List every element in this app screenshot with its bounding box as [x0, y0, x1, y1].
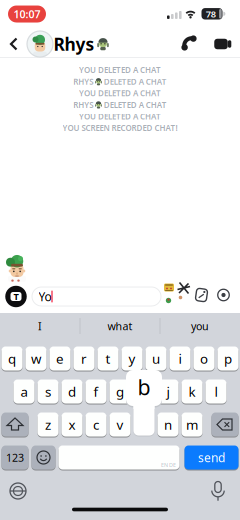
button[interactable]: k — [181, 379, 202, 404]
staticText: y — [128, 350, 135, 367]
staticText: Yo — [38, 288, 51, 304]
button[interactable]: g — [109, 379, 130, 404]
staticText: o — [200, 350, 208, 367]
button[interactable]: Rhys — [53, 32, 108, 55]
staticText: u — [152, 350, 160, 367]
button[interactable]: I — [10, 316, 70, 336]
button[interactable]: s — [37, 379, 58, 404]
staticText: c — [93, 416, 99, 433]
staticText: EN DE — [161, 461, 176, 469]
staticText: a — [20, 383, 27, 400]
button[interactable]: i — [169, 346, 190, 371]
button[interactable]: Delete — [211, 412, 238, 437]
button[interactable]: you — [170, 316, 230, 336]
staticText: q — [8, 350, 16, 367]
staticText: I — [38, 319, 42, 333]
staticText: i — [178, 350, 181, 367]
staticText: j — [166, 383, 169, 400]
button[interactable]: c — [85, 412, 106, 437]
button[interactable]: Rhys profile — [27, 31, 53, 57]
staticText: m — [186, 416, 198, 433]
button[interactable]: p — [217, 346, 238, 371]
staticText: b — [137, 373, 150, 401]
button[interactable]: q — [1, 346, 22, 371]
button[interactable]: u — [145, 346, 166, 371]
button[interactable]: Stickers — [164, 282, 190, 304]
button[interactable]: Stop screen recording — [8, 5, 46, 22]
staticText: n — [164, 416, 172, 433]
button[interactable]: r — [73, 346, 94, 371]
button[interactable]: Camera — [5, 286, 27, 307]
button[interactable]: Back — [8, 34, 20, 54]
button[interactable]: Audio call — [180, 34, 200, 54]
button[interactable]: l — [205, 379, 226, 404]
staticText: d — [68, 383, 76, 400]
staticText: p — [224, 350, 232, 367]
staticText: e — [56, 350, 64, 367]
button[interactable]: Dictate — [209, 481, 227, 501]
button[interactable]: h — [133, 379, 154, 404]
staticText: YOU DELETED A CHAT — [79, 88, 161, 98]
staticText: T — [13, 290, 18, 303]
button[interactable]: t — [97, 346, 118, 371]
button[interactable]: m — [181, 412, 202, 437]
button[interactable]: n — [157, 412, 178, 437]
button[interactable]: o — [193, 346, 214, 371]
button[interactable]: what — [90, 316, 150, 336]
button[interactable]: Next keyboard — [9, 482, 27, 500]
staticText: z — [45, 416, 51, 433]
staticText: send — [198, 449, 225, 465]
staticText: t — [105, 350, 110, 367]
staticText: k — [188, 383, 195, 400]
button[interactable]: Shift — [1, 412, 28, 437]
staticText: YOU DELETED A CHAT — [79, 65, 161, 75]
button[interactable]: v — [109, 412, 130, 437]
button[interactable]: w — [25, 346, 46, 371]
button[interactable]: e — [49, 346, 70, 371]
button[interactable]: Video call — [210, 37, 232, 51]
staticText: YOU DELETED A CHAT — [79, 111, 161, 122]
button[interactable]: x — [61, 412, 82, 437]
staticText: 123 — [6, 450, 24, 465]
staticText: what — [107, 319, 132, 333]
button[interactable]: Yo — [32, 287, 161, 306]
staticText: 10:07 — [13, 7, 40, 21]
button[interactable]: a — [13, 379, 34, 404]
staticText: v — [116, 416, 123, 433]
button[interactable]: z — [37, 412, 58, 437]
staticText: Rhys — [53, 32, 94, 55]
staticText: RHYS — [73, 99, 93, 110]
staticText: you — [191, 319, 209, 333]
button[interactable]: Space — [58, 445, 179, 470]
button[interactable]: 123 — [1, 445, 28, 470]
staticText: g — [116, 383, 124, 400]
staticText: DELETED A CHAT — [104, 76, 167, 87]
staticText: l — [214, 383, 217, 400]
button[interactable]: Emoji — [31, 445, 55, 470]
staticText: s — [45, 383, 51, 400]
button[interactable]: Share location — [216, 287, 231, 302]
staticText: YOU SCREEN RECORDED CHAT! — [62, 123, 177, 133]
staticText: x — [68, 416, 75, 433]
staticText: RHYS — [73, 76, 93, 87]
staticText: r — [81, 350, 87, 367]
staticText: w — [31, 350, 41, 367]
button[interactable]: d — [61, 379, 82, 404]
staticText: f — [93, 383, 98, 400]
staticText: DELETED A CHAT — [104, 99, 167, 110]
button[interactable]: Snap attachments — [194, 287, 209, 302]
button[interactable]: Send — [184, 445, 238, 470]
staticText: 78 — [206, 8, 216, 20]
button[interactable]: f — [85, 379, 106, 404]
button[interactable]: y — [121, 346, 142, 371]
button[interactable]: j — [157, 379, 178, 404]
staticText: h — [140, 383, 148, 400]
